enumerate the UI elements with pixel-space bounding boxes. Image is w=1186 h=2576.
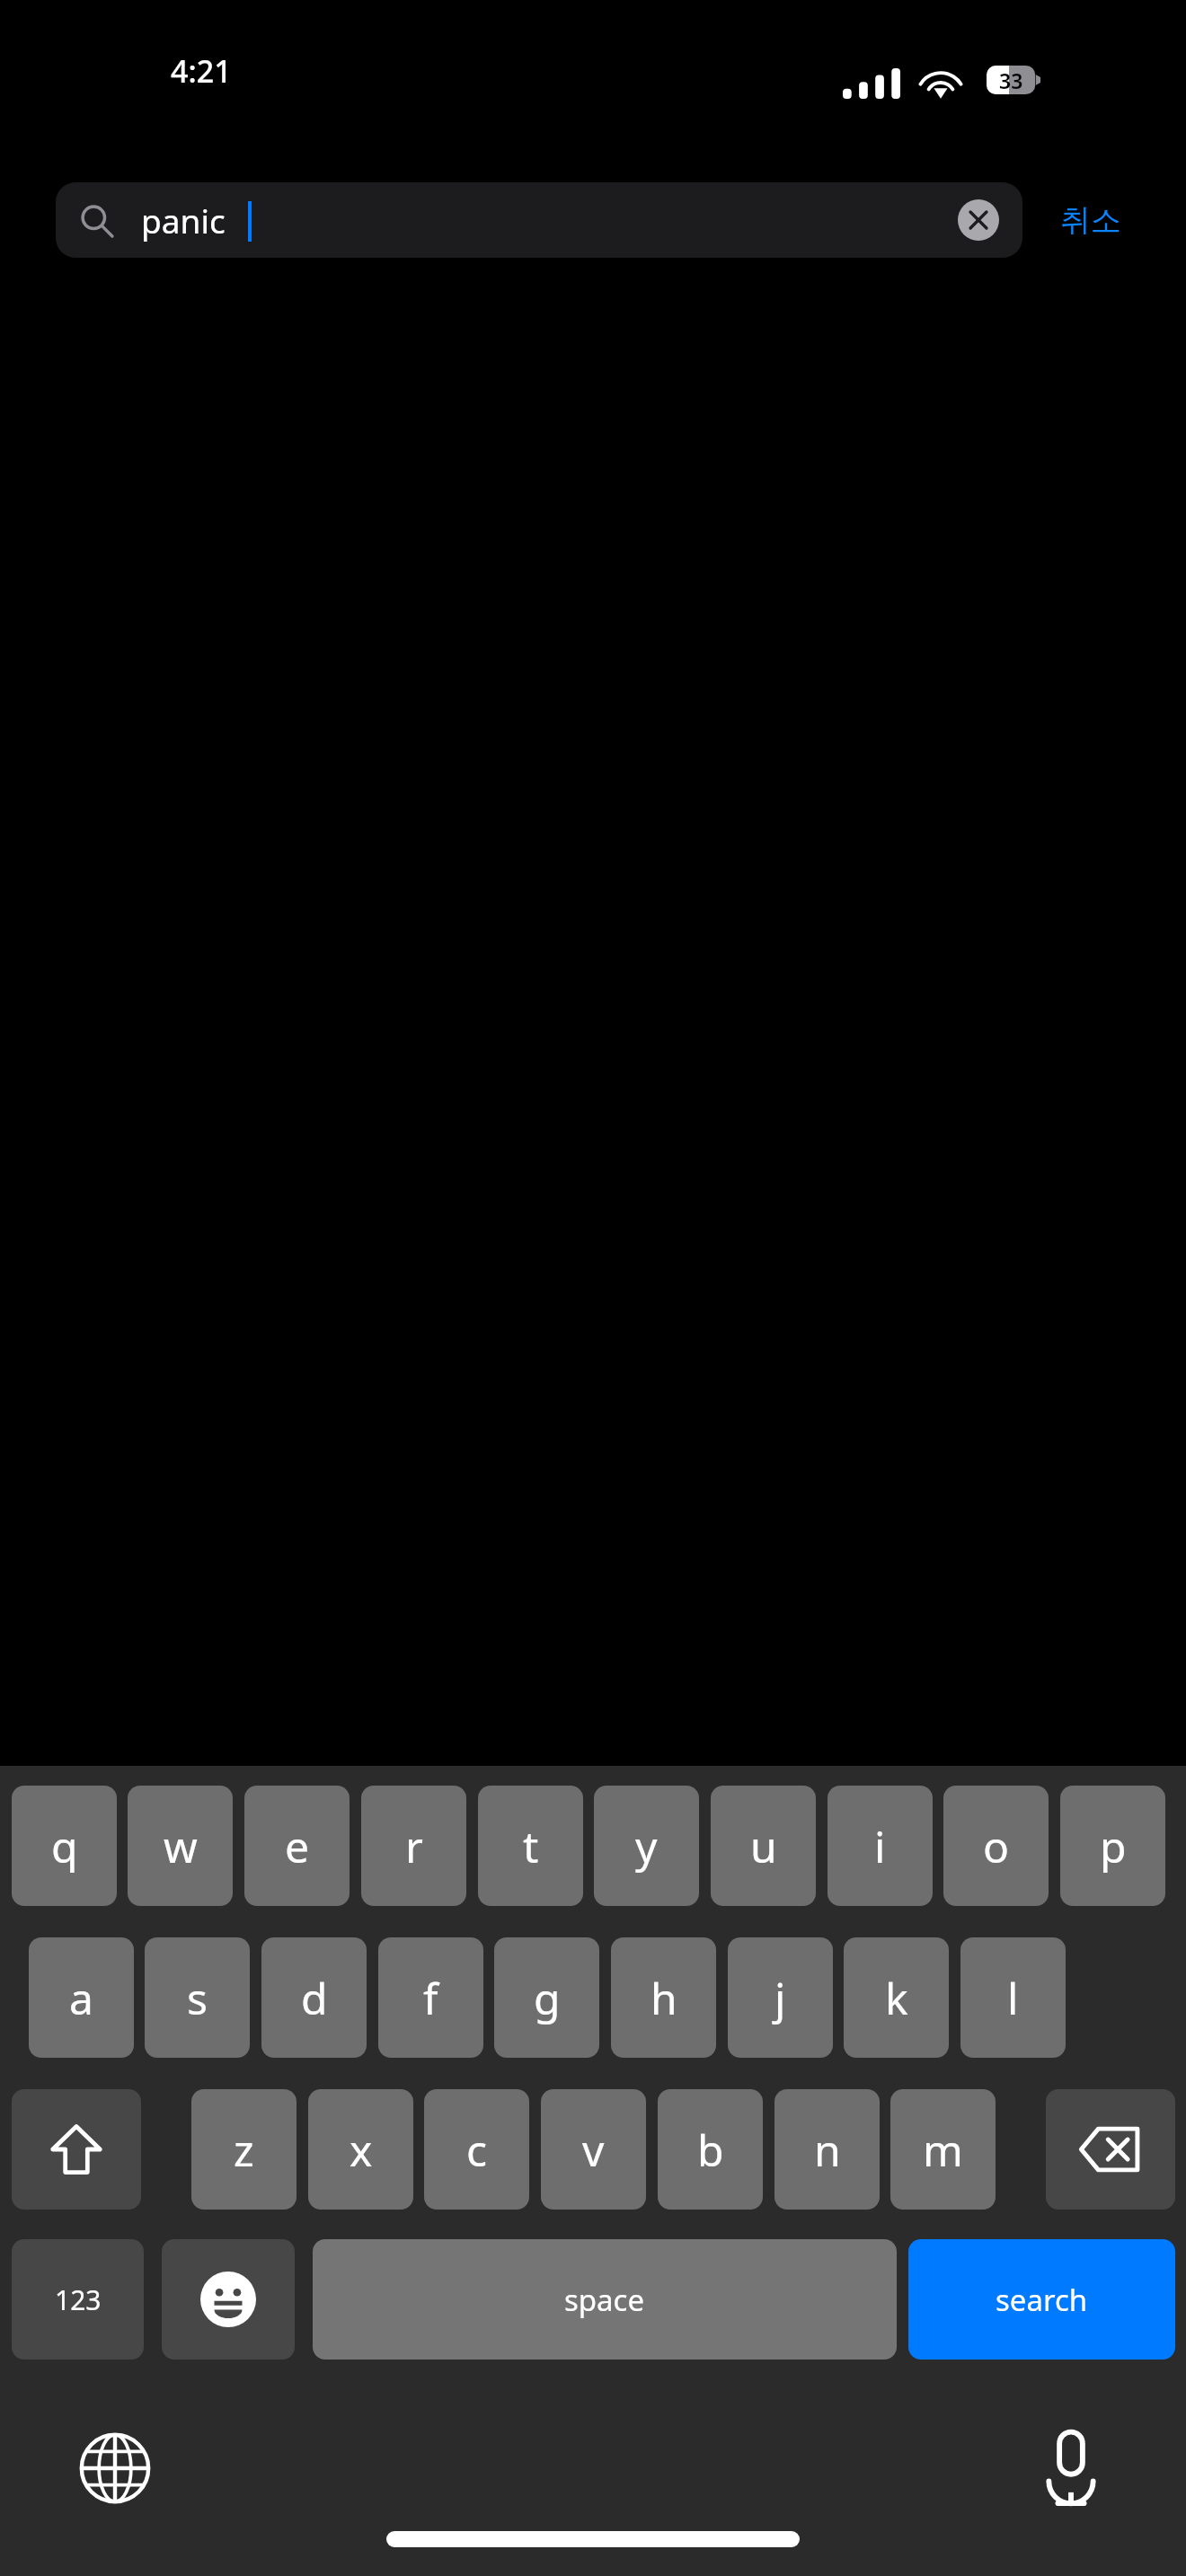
staticText: m <box>923 2121 963 2179</box>
staticText: s <box>187 1969 208 2027</box>
button[interactable]: l <box>960 1937 1066 2058</box>
staticText: panic <box>141 198 226 243</box>
button[interactable]: m <box>890 2089 996 2210</box>
button[interactable]: k <box>844 1937 949 2058</box>
staticText: j <box>774 1969 786 2027</box>
button[interactable]: e <box>244 1786 350 1906</box>
staticText: a <box>69 1969 93 2027</box>
button[interactable]: 123 <box>12 2239 144 2360</box>
staticText: t <box>523 1817 539 1875</box>
button[interactable]: p <box>1060 1786 1165 1906</box>
staticText: q <box>51 1817 78 1875</box>
staticText: 33 <box>999 66 1023 94</box>
button[interactable]: Backspace <box>1046 2089 1175 2210</box>
staticText: 4:21 <box>171 50 232 92</box>
staticText: e <box>285 1817 310 1875</box>
button[interactable]: z <box>191 2089 296 2210</box>
staticText: y <box>635 1817 658 1875</box>
button[interactable]: Next keyboard <box>63 2416 167 2520</box>
staticText: n <box>814 2121 841 2179</box>
staticText: 123 <box>55 2281 102 2318</box>
button[interactable]: x <box>308 2089 413 2210</box>
button[interactable]: q <box>12 1786 117 1906</box>
staticText: f <box>423 1969 438 2027</box>
staticText: u <box>750 1817 777 1875</box>
staticText: h <box>651 1969 677 2027</box>
staticText: p <box>1100 1817 1127 1875</box>
button[interactable]: s <box>145 1937 250 2058</box>
button[interactable]: a <box>29 1937 134 2058</box>
staticText: d <box>301 1969 328 2027</box>
button[interactable]: o <box>943 1786 1049 1906</box>
staticText: search <box>996 2280 1088 2320</box>
button[interactable]: Shift <box>12 2089 141 2210</box>
staticText: l <box>1007 1969 1019 2027</box>
staticText: z <box>234 2121 254 2179</box>
staticText: i <box>874 1817 886 1875</box>
button[interactable]: Clear text <box>958 199 999 241</box>
button[interactable]: u <box>711 1786 816 1906</box>
staticText: v <box>582 2121 605 2179</box>
staticText: space <box>564 2280 645 2320</box>
staticText: k <box>885 1969 908 2027</box>
staticText: x <box>350 2121 373 2179</box>
button[interactable]: Dictate <box>1019 2416 1123 2520</box>
button[interactable]: j <box>728 1937 833 2058</box>
staticText: c <box>466 2121 488 2179</box>
button[interactable]: c <box>424 2089 529 2210</box>
button[interactable]: b <box>658 2089 763 2210</box>
staticText: b <box>697 2121 724 2179</box>
button[interactable]: w <box>128 1786 233 1906</box>
button[interactable]: space <box>313 2239 897 2360</box>
staticText: w <box>164 1817 198 1875</box>
button[interactable]: y <box>594 1786 699 1906</box>
button[interactable]: t <box>478 1786 583 1906</box>
button[interactable]: d <box>261 1937 367 2058</box>
button[interactable]: g <box>494 1937 599 2058</box>
button[interactable]: search <box>908 2239 1175 2360</box>
button[interactable]: h <box>611 1937 716 2058</box>
button[interactable]: n <box>774 2089 880 2210</box>
button[interactable]: i <box>828 1786 933 1906</box>
staticText: o <box>983 1817 1010 1875</box>
button[interactable]: Emoji keyboard <box>162 2239 295 2360</box>
button[interactable]: v <box>541 2089 646 2210</box>
button[interactable]: 취소 <box>1040 182 1141 258</box>
staticText: 취소 <box>1060 201 1121 240</box>
staticText: g <box>534 1969 561 2027</box>
button[interactable]: f <box>378 1937 483 2058</box>
button[interactable]: panic <box>56 182 1022 258</box>
button[interactable]: r <box>361 1786 466 1906</box>
staticText: r <box>405 1817 423 1875</box>
